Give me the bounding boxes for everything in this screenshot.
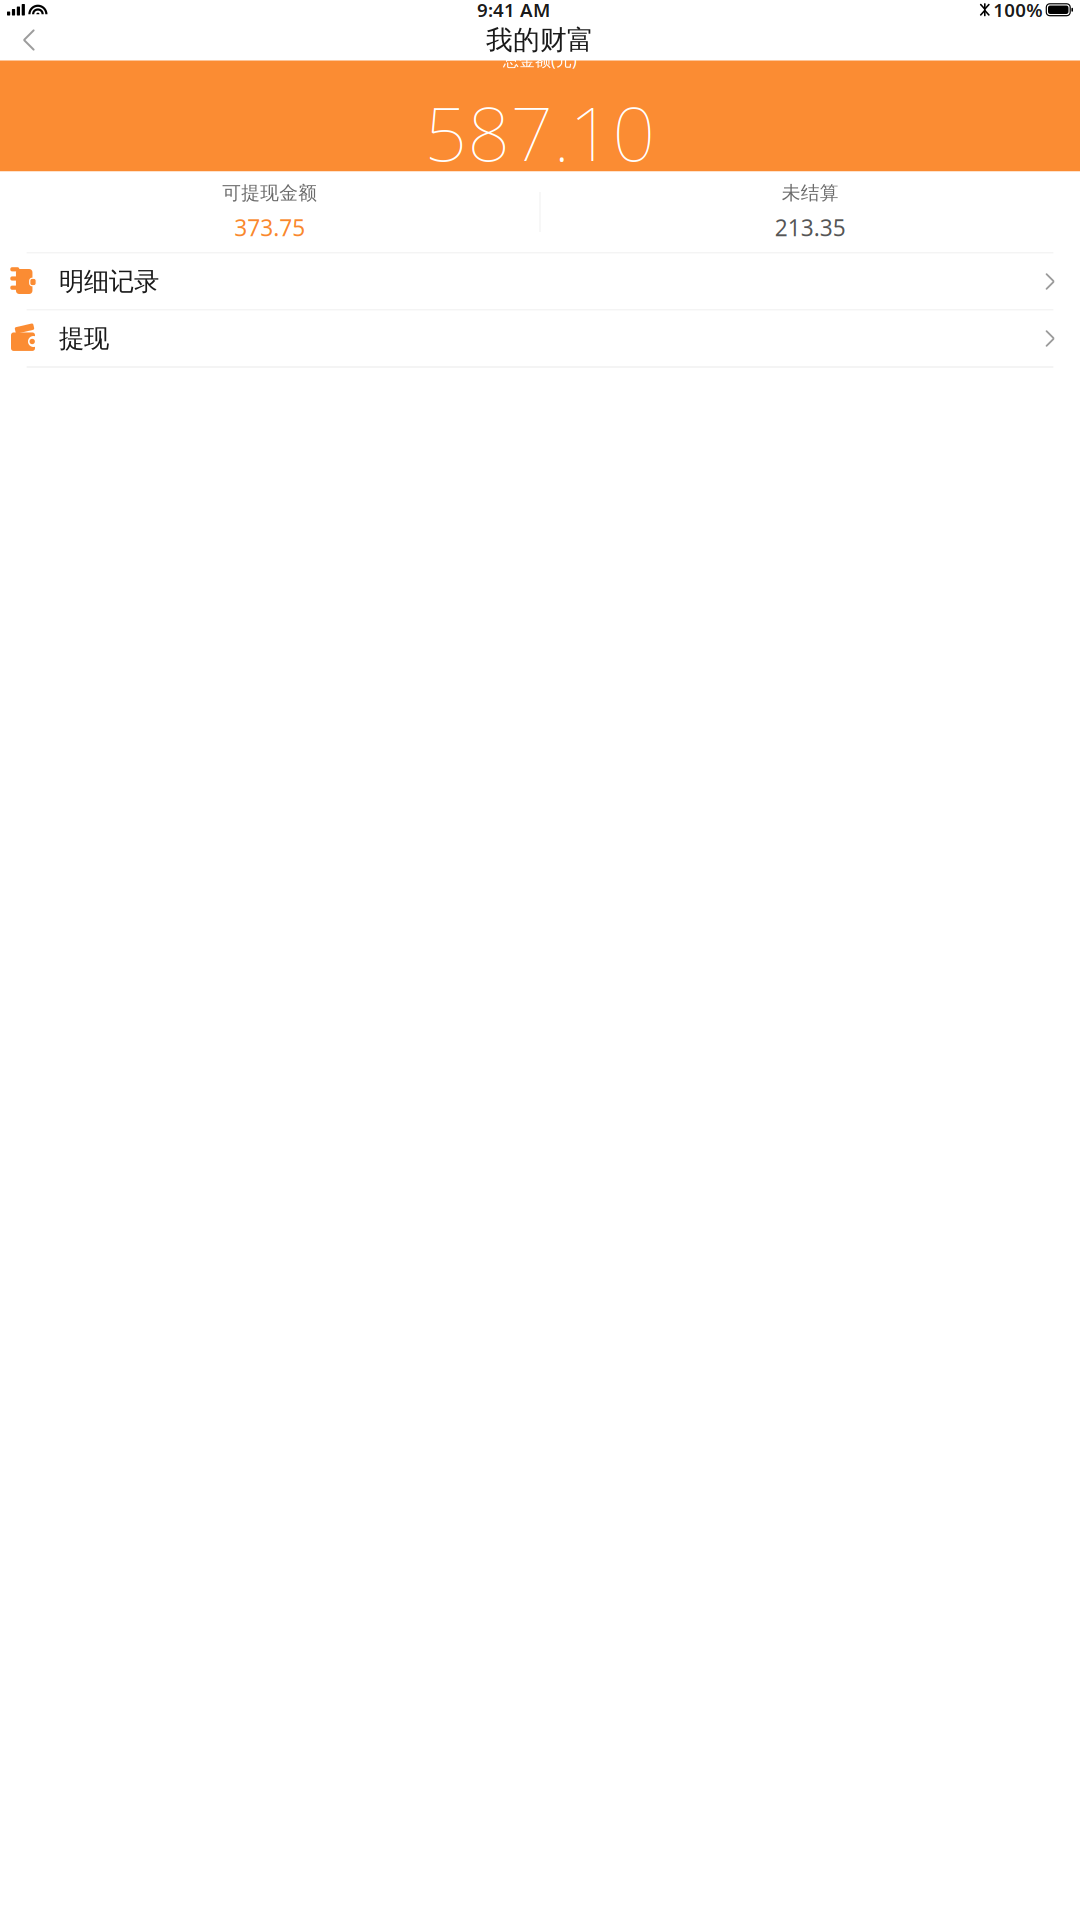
staticText: 9:41 AM bbox=[477, 0, 550, 22]
staticText: 213.35 bbox=[775, 212, 846, 242]
staticText: 明细记录 bbox=[59, 266, 159, 297]
staticText: 587.10 bbox=[424, 82, 655, 182]
staticText: 未结算 bbox=[782, 181, 839, 204]
staticText: 可提现金额 bbox=[222, 181, 317, 204]
staticText: 100% bbox=[993, 0, 1042, 22]
staticText: 我的财富 bbox=[486, 24, 594, 56]
button[interactable]: Back bbox=[7, 19, 51, 60]
staticText: 总金额(元) bbox=[503, 49, 577, 70]
staticText: 373.75 bbox=[234, 212, 305, 242]
button[interactable]: 明细记录 bbox=[0, 253, 1080, 309]
button[interactable]: 提现 bbox=[0, 310, 1080, 366]
staticText: 提现 bbox=[59, 323, 109, 354]
